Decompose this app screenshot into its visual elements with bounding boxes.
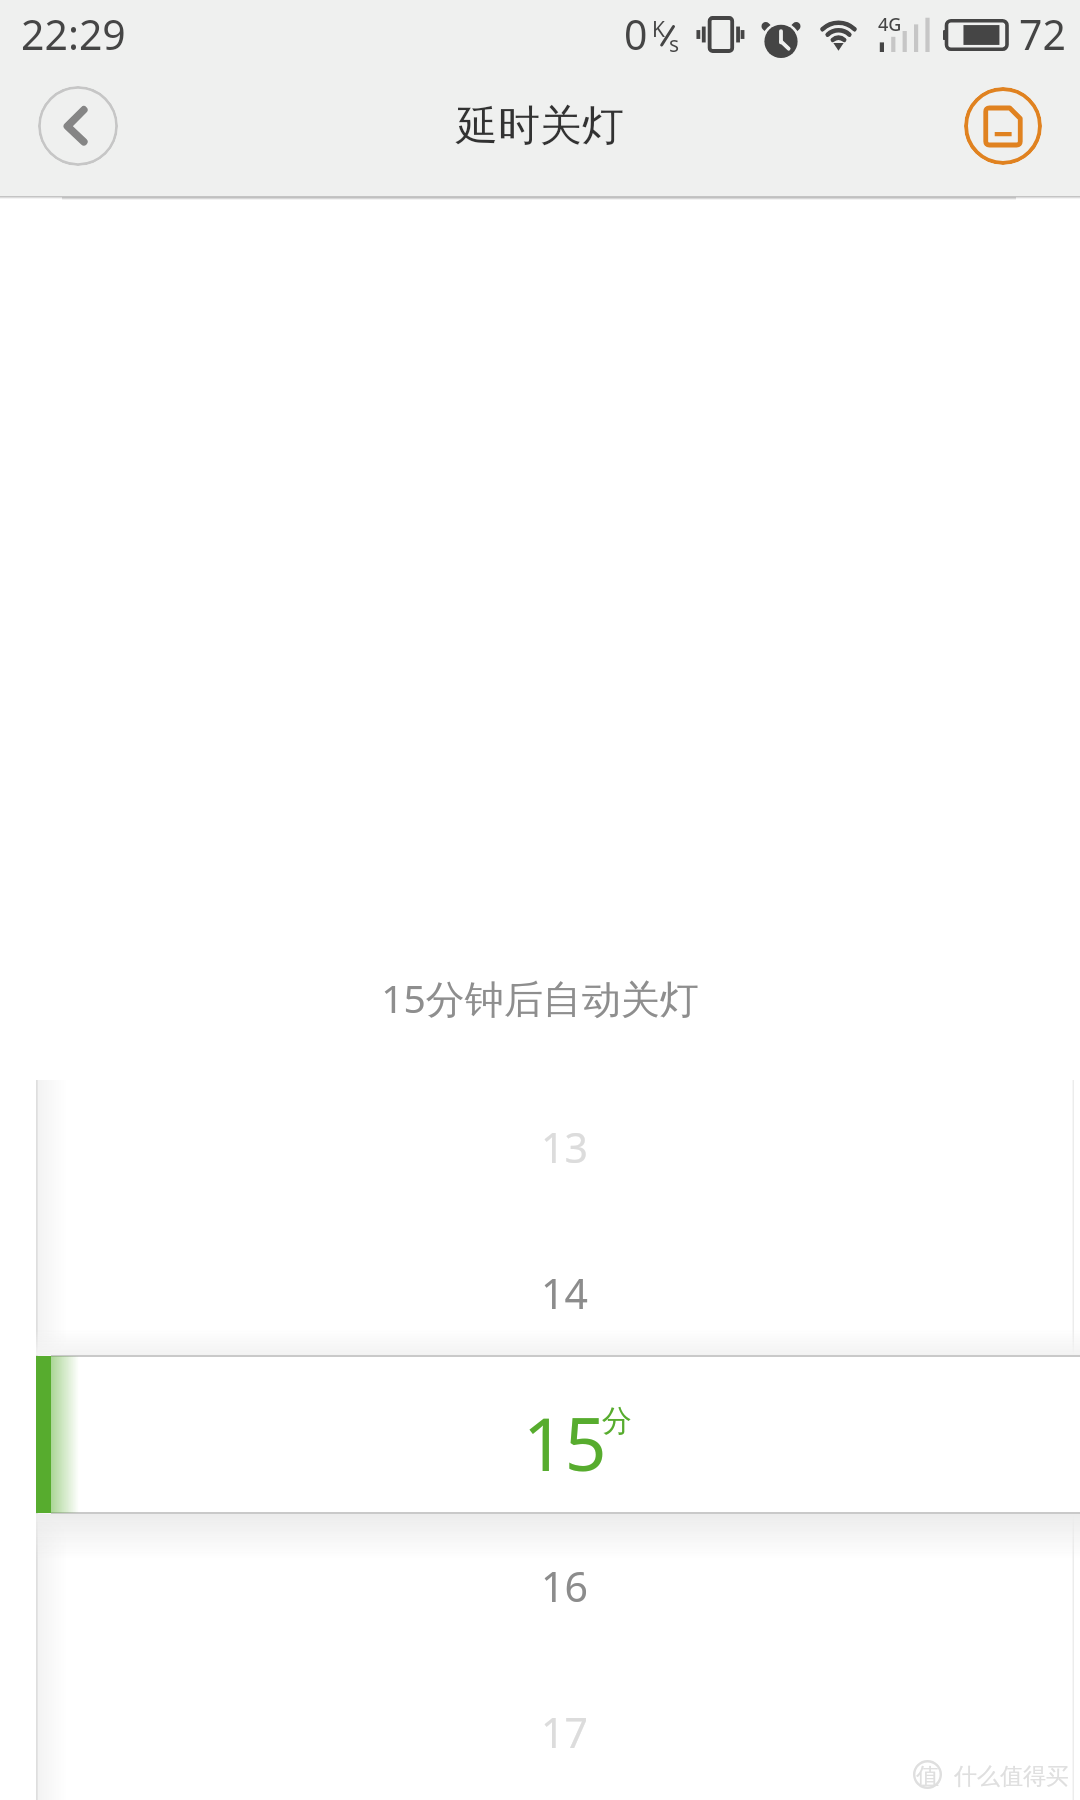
staticText: 72 (1019, 6, 1066, 62)
button[interactable]: Manual (964, 87, 1042, 165)
staticText: 17 (541, 1704, 588, 1760)
staticText: 14 (541, 1265, 588, 1321)
staticText: 延时关灯 (456, 100, 624, 153)
button[interactable]: Back (38, 86, 118, 166)
staticText: 22:29 (21, 6, 126, 62)
staticText: 4G (878, 12, 902, 37)
staticText: 13 (541, 1119, 588, 1175)
staticText: 16 (541, 1558, 588, 1614)
staticText: 15 (523, 1393, 607, 1492)
staticText: 什么值得买 (954, 1762, 1069, 1791)
staticText: 0 (624, 6, 648, 62)
button[interactable]: 15 minutes (0, 1355, 1080, 1514)
staticText: s (669, 30, 680, 59)
staticText: K (652, 15, 665, 44)
staticText: 15分钟后自动关灯 (0, 971, 1080, 1024)
staticText: 分 (602, 1402, 632, 1440)
staticText: 值 (916, 1762, 939, 1791)
